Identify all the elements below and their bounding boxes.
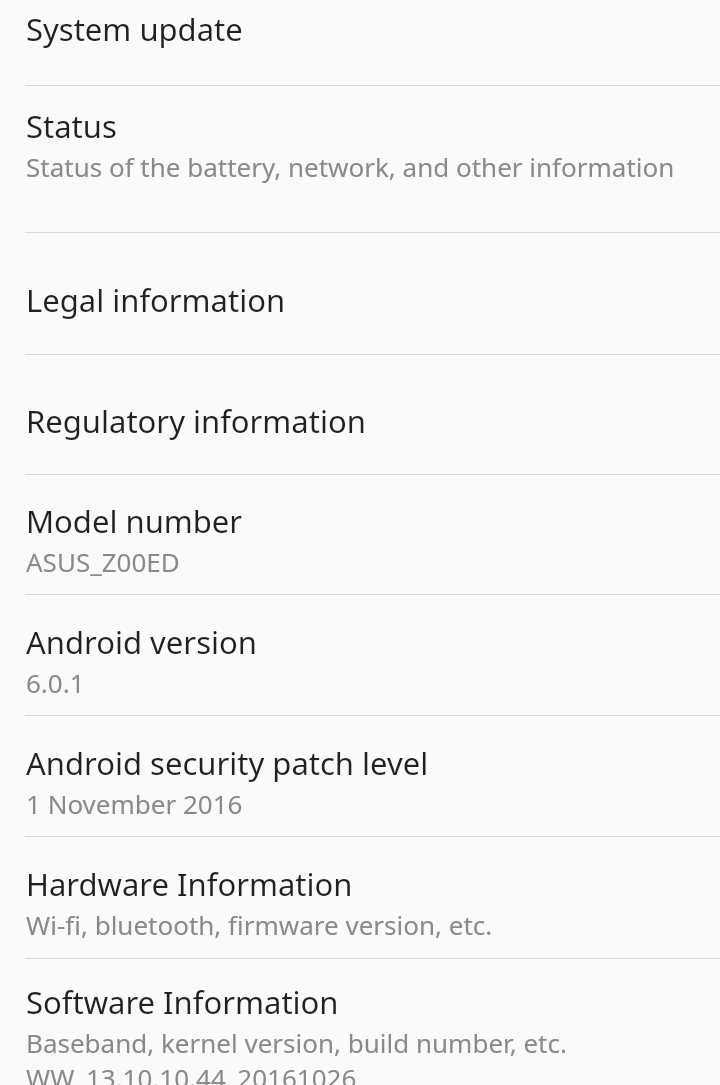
button[interactable]: Android version — [0, 595, 720, 715]
staticText: Status — [26, 105, 117, 147]
button[interactable]: Legal information — [0, 233, 720, 354]
button[interactable]: System update — [0, 0, 720, 85]
staticText: Wi-fi, bluetooth, firmware version, etc. — [26, 907, 493, 942]
staticText: Android security patch level — [26, 742, 429, 784]
staticText: 6.0.1 — [26, 665, 85, 700]
button[interactable]: Regulatory information — [0, 355, 720, 474]
staticText: Status of the battery, network, and othe… — [26, 149, 675, 184]
staticText: Android version — [26, 621, 257, 663]
button[interactable]: Status — [0, 86, 720, 232]
button[interactable]: Android security patch level — [0, 716, 720, 836]
button[interactable]: Model number — [0, 475, 720, 594]
staticText: Legal information — [26, 279, 286, 321]
button[interactable]: Software Information — [0, 959, 720, 1085]
staticText: ASUS_Z00ED — [26, 544, 180, 579]
staticText: Baseband, kernel version, build number, … — [26, 1025, 567, 1060]
button[interactable]: Hardware Information — [0, 837, 720, 958]
staticText: System update — [26, 8, 243, 50]
staticText: Model number — [26, 500, 243, 542]
staticText: Software Information — [26, 981, 339, 1023]
staticText: Regulatory information — [26, 400, 366, 442]
staticText: WW_13.10.10.44_20161026 — [26, 1060, 357, 1085]
staticText: Hardware Information — [26, 863, 353, 905]
staticText: 1 November 2016 — [26, 786, 243, 821]
